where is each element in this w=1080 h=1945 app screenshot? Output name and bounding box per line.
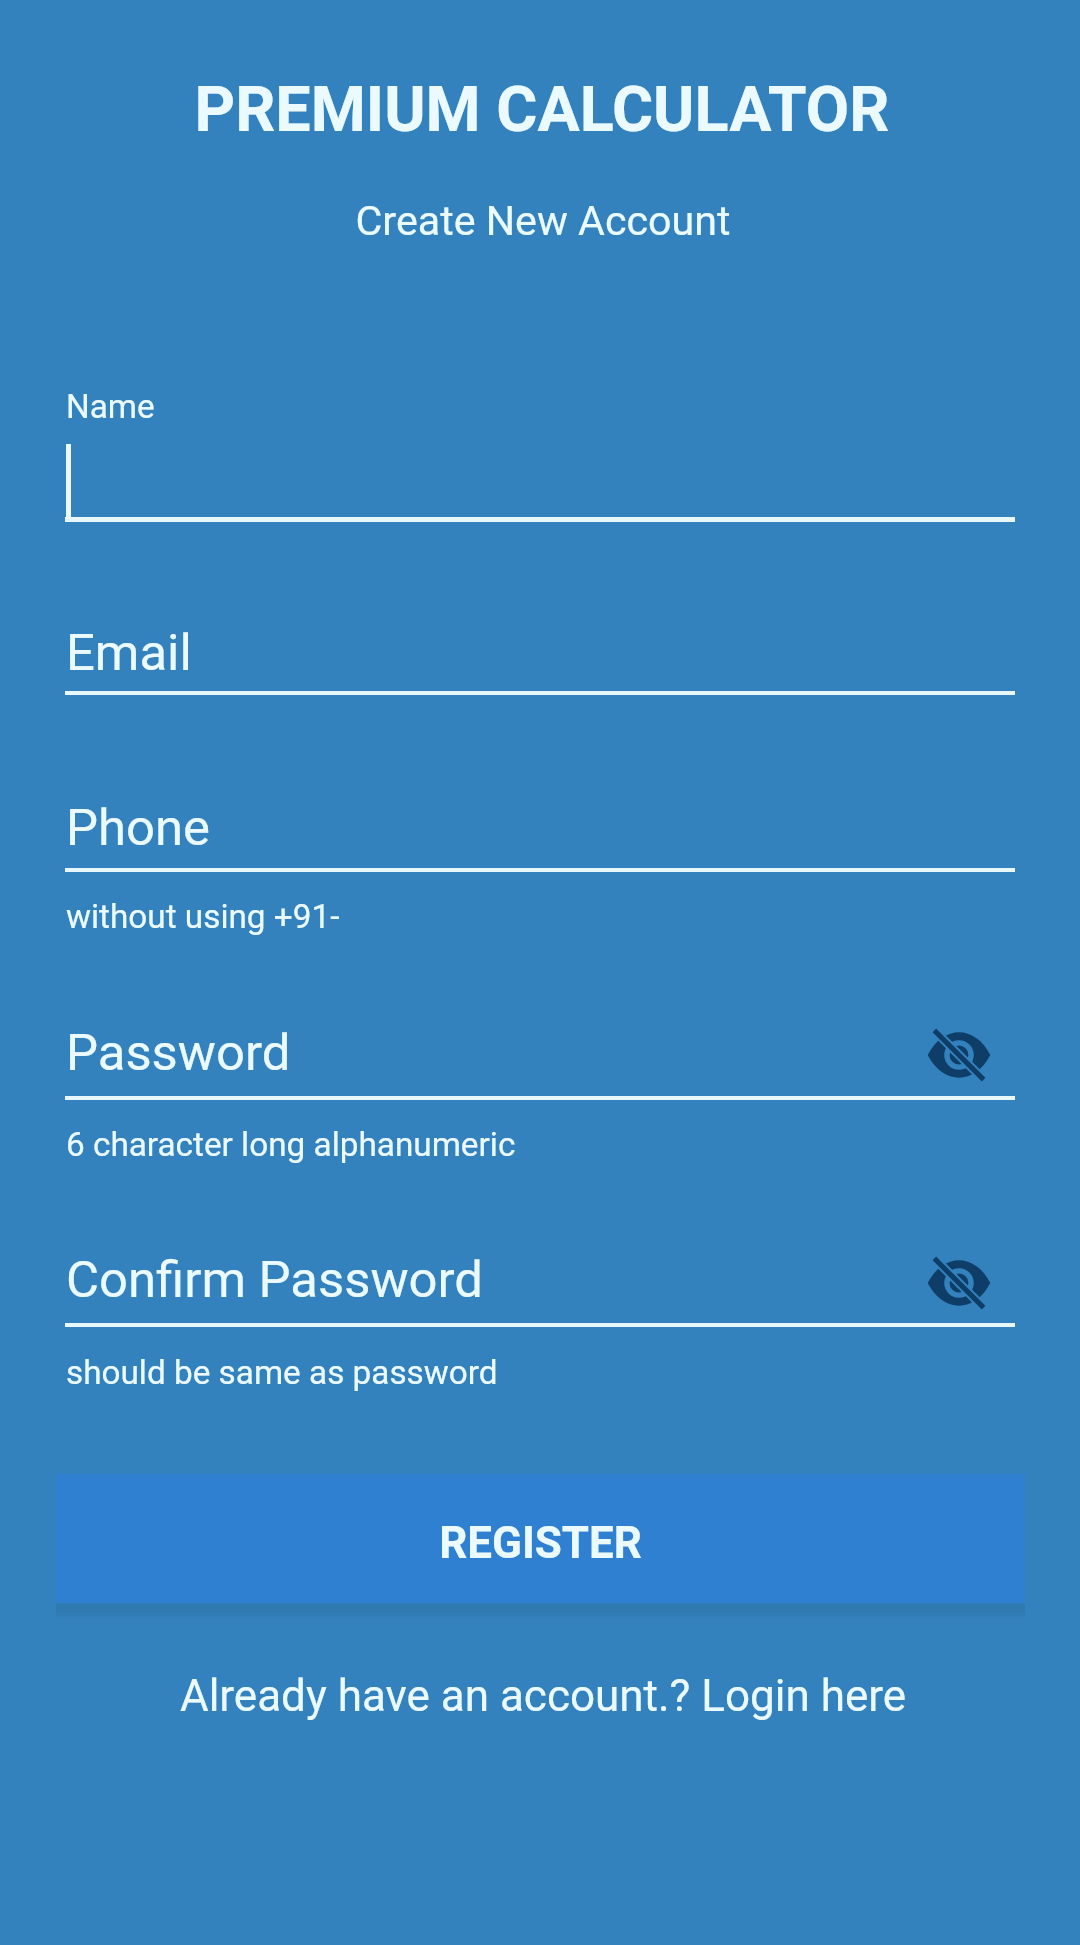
button[interactable]: Email (65, 612, 1015, 698)
button[interactable]: Phone (65, 788, 1015, 875)
staticText: Name (66, 387, 155, 426)
staticText: Create New Account (3, 197, 1080, 245)
button[interactable]: Show password (928, 1024, 990, 1086)
staticText: REGISTER (56, 1517, 1025, 1569)
staticText: should be same as password (66, 1353, 498, 1392)
staticText: Confirm Password (66, 1250, 483, 1310)
staticText: Password (66, 1023, 291, 1083)
button[interactable]: Password (65, 1013, 1015, 1103)
staticText: Email (66, 623, 192, 683)
staticText: PREMIUM CALCULATOR (2, 73, 1080, 147)
staticText: Already have an account.? Login here (3, 1670, 1080, 1722)
button[interactable]: Already have an account.? Login here (0, 1650, 1080, 1740)
button[interactable]: Confirm Password (65, 1240, 1015, 1330)
button[interactable]: Name (65, 372, 1015, 522)
staticText: Phone (66, 798, 210, 858)
button[interactable]: Show confirm password (928, 1252, 990, 1314)
staticText: 6 character long alphanumeric (66, 1125, 516, 1164)
button[interactable]: REGISTER (56, 1474, 1025, 1603)
staticText: without using +91- (66, 897, 340, 936)
